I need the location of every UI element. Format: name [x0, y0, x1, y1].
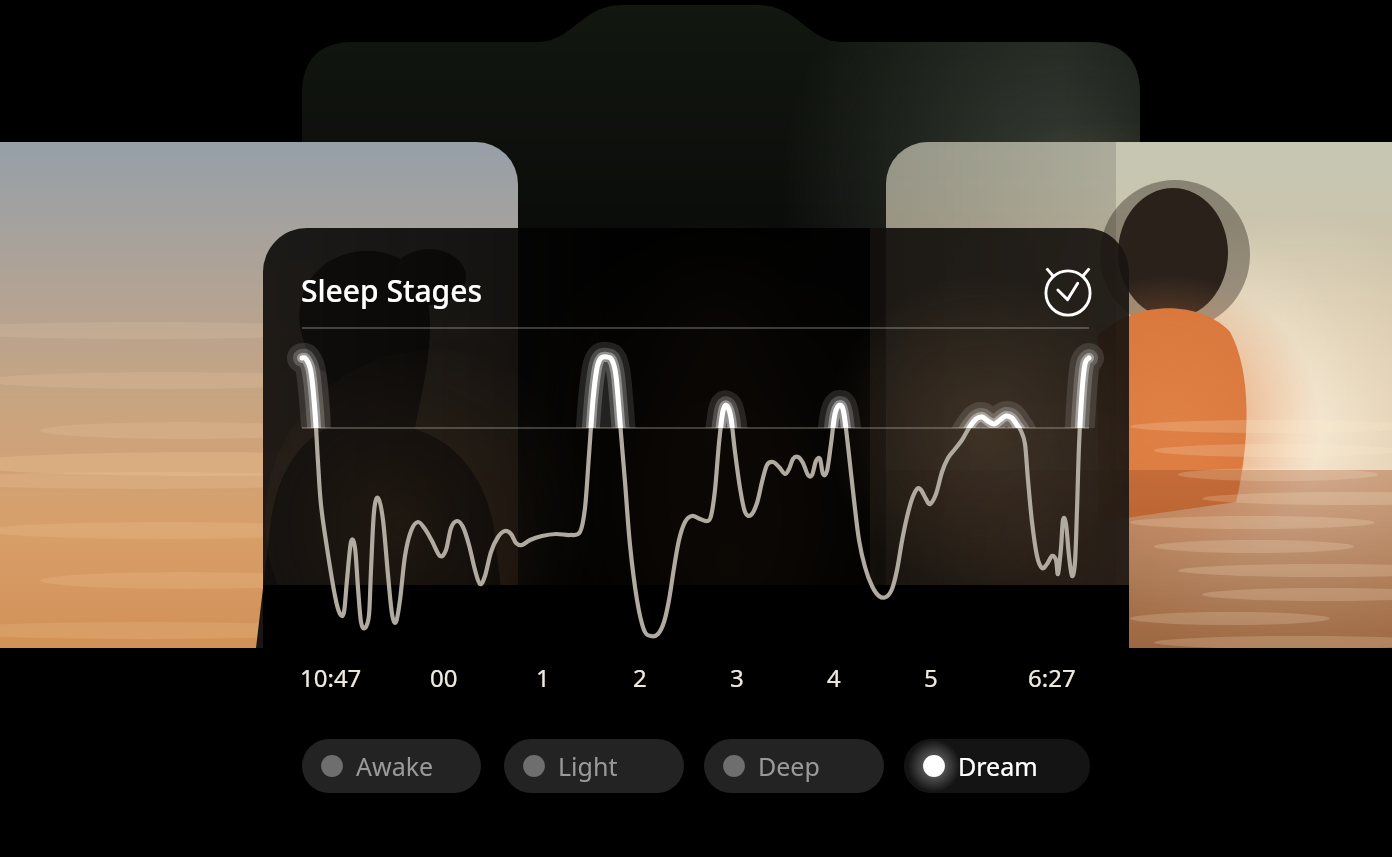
staticText: 3	[730, 661, 744, 694]
staticText: Dream	[958, 749, 1038, 783]
staticText: Sleep Stages	[301, 270, 482, 311]
staticText: 2	[633, 661, 647, 694]
staticText: Awake	[356, 749, 434, 783]
staticText: 5	[924, 661, 938, 694]
button[interactable]: Set alarm	[1036, 260, 1100, 324]
button[interactable]: Deep	[704, 739, 884, 793]
staticText: 1	[536, 661, 550, 694]
staticText: 10:47	[300, 661, 362, 694]
staticText: 4	[827, 661, 841, 694]
button[interactable]: Light	[504, 739, 684, 793]
staticText: Light	[558, 749, 618, 783]
staticText: 00	[430, 661, 458, 694]
button[interactable]: Dream	[904, 739, 1090, 793]
button[interactable]: Awake	[302, 739, 481, 793]
staticText: Deep	[758, 749, 820, 783]
staticText: 6:27	[1028, 661, 1076, 694]
